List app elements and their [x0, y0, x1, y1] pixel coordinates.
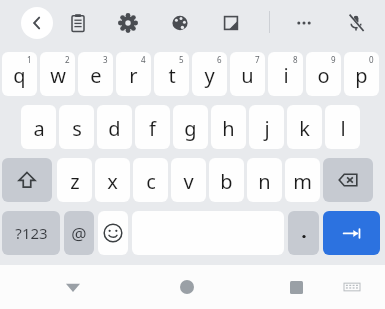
staticText: y	[204, 62, 215, 89]
staticText: q	[13, 62, 26, 89]
button[interactable]: ?123	[2, 211, 60, 255]
staticText: 9	[331, 54, 336, 65]
button[interactable]: a	[21, 105, 56, 149]
staticText: ?123	[15, 223, 48, 243]
staticText: g	[184, 115, 197, 142]
staticText: d	[108, 115, 121, 142]
staticText: p	[355, 62, 368, 89]
button[interactable]: j	[249, 105, 284, 149]
staticText: 5	[179, 54, 184, 65]
button[interactable]: Recents	[285, 276, 307, 298]
staticText: t	[168, 62, 176, 89]
button[interactable]: Voice input off	[340, 7, 372, 39]
staticText: 3	[103, 54, 108, 65]
button[interactable]: g	[173, 105, 208, 149]
staticText: u	[241, 62, 254, 89]
button[interactable]: More options	[288, 7, 320, 39]
button[interactable]: i	[268, 52, 303, 96]
button[interactable]: o	[306, 52, 341, 96]
staticText: a	[33, 115, 45, 142]
button[interactable]: Shift	[2, 158, 52, 202]
button[interactable]: Theme	[164, 7, 196, 39]
staticText: w	[50, 62, 66, 89]
staticText: f	[149, 115, 156, 142]
button[interactable]: f	[135, 105, 170, 149]
staticText: k	[299, 115, 310, 142]
staticText: h	[222, 115, 235, 142]
staticText: m	[293, 168, 312, 195]
staticText: x	[107, 168, 118, 195]
button[interactable]: b	[209, 158, 244, 202]
button[interactable]: z	[57, 158, 92, 202]
button[interactable]: Settings	[112, 7, 144, 39]
staticText: s	[72, 115, 82, 142]
button[interactable]: Backspace	[323, 158, 373, 202]
staticText: 6	[217, 54, 222, 65]
button[interactable]: x	[95, 158, 130, 202]
staticText: z	[70, 168, 80, 195]
button[interactable]: Resize keyboard	[215, 7, 247, 39]
button[interactable]: Back	[62, 276, 84, 298]
button[interactable]: Home	[176, 276, 198, 298]
button[interactable]: w	[40, 52, 75, 96]
button[interactable]: m	[285, 158, 320, 202]
button[interactable]: @	[64, 211, 94, 255]
button[interactable]: Clipboard	[62, 7, 94, 39]
button[interactable]: e	[78, 52, 113, 96]
staticText: 7	[255, 54, 260, 65]
staticText: n	[258, 168, 271, 195]
button[interactable]: r	[116, 52, 151, 96]
button[interactable]: Switch keyboard	[341, 276, 363, 298]
button[interactable]: k	[287, 105, 322, 149]
staticText: 2	[65, 54, 70, 65]
staticText: @	[71, 222, 87, 245]
staticText: i	[283, 62, 289, 89]
button[interactable]: c	[133, 158, 168, 202]
button[interactable]: n	[247, 158, 282, 202]
button[interactable]: d	[97, 105, 132, 149]
button[interactable]: u	[230, 52, 265, 96]
button[interactable]: l	[325, 105, 360, 149]
button[interactable]: s	[59, 105, 94, 149]
button[interactable]: h	[211, 105, 246, 149]
staticText: r	[129, 62, 138, 89]
button[interactable]: Enter	[323, 211, 380, 255]
staticText: e	[90, 62, 102, 89]
button[interactable]: Back	[21, 7, 53, 39]
button[interactable]: Emoji	[98, 211, 128, 255]
staticText: 8	[293, 54, 298, 65]
staticText: 1	[27, 54, 32, 65]
button[interactable]: v	[171, 158, 206, 202]
button[interactable]: t	[154, 52, 189, 96]
staticText: l	[340, 115, 346, 142]
button[interactable]: q	[2, 52, 37, 96]
staticText: o	[317, 62, 330, 89]
staticText: b	[220, 168, 233, 195]
button[interactable]: p	[344, 52, 379, 96]
staticText: c	[146, 168, 156, 195]
button[interactable]: y	[192, 52, 227, 96]
staticText: v	[183, 168, 194, 195]
staticText: j	[264, 115, 270, 142]
button[interactable]: Period	[288, 211, 319, 255]
staticText: 0	[369, 54, 374, 65]
staticText: 4	[141, 54, 146, 65]
